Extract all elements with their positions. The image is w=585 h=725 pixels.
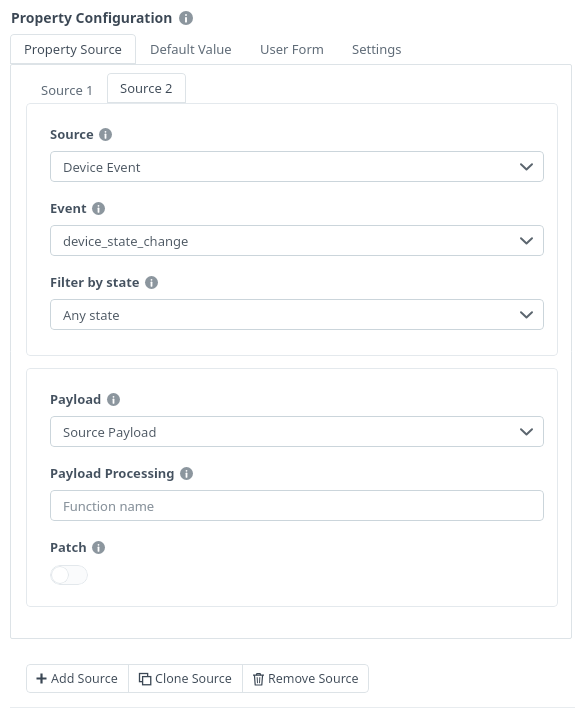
button[interactable]: Remove Source [243,664,369,693]
button[interactable]: User Form [246,34,338,64]
staticText: Property Source [24,40,122,58]
staticText: Source Payload [63,423,521,441]
staticText: Function name [63,497,155,515]
staticText: Source 2 [120,79,173,97]
button[interactable]: Function name [50,490,544,521]
staticText: Settings [352,40,402,58]
staticText: User Form [260,40,324,58]
staticText: Device Event [63,158,521,176]
button[interactable]: Source 2 [107,73,186,103]
button[interactable]: Add Source [26,664,128,693]
staticText: Filter by state [50,273,140,291]
button[interactable]: Default Value [136,34,246,64]
staticText: Add Source [51,670,118,687]
staticText: Patch [50,538,87,556]
staticText: Payload [50,390,102,408]
staticText: Default Value [150,40,232,58]
button[interactable]: Patch toggle, off [50,565,88,585]
staticText: Any state [63,306,521,324]
staticText: Source 1 [41,81,94,99]
staticText: device_state_change [63,232,521,250]
staticText: Property Configuration [11,8,173,27]
staticText: Remove Source [268,670,359,687]
staticText: Source [50,125,94,143]
button[interactable]: Clone Source [129,664,242,693]
button[interactable]: Source 1 [28,76,107,103]
button[interactable]: Device Event [50,151,544,182]
staticText: Event [50,199,87,217]
button[interactable]: Property Source [10,34,136,64]
button[interactable]: Source Payload [50,416,544,447]
button[interactable]: Any state [50,299,544,330]
button[interactable]: Settings [338,34,416,64]
staticText: Clone Source [155,670,232,687]
button[interactable]: device_state_change [50,225,544,256]
staticText: Payload Processing [50,464,175,482]
